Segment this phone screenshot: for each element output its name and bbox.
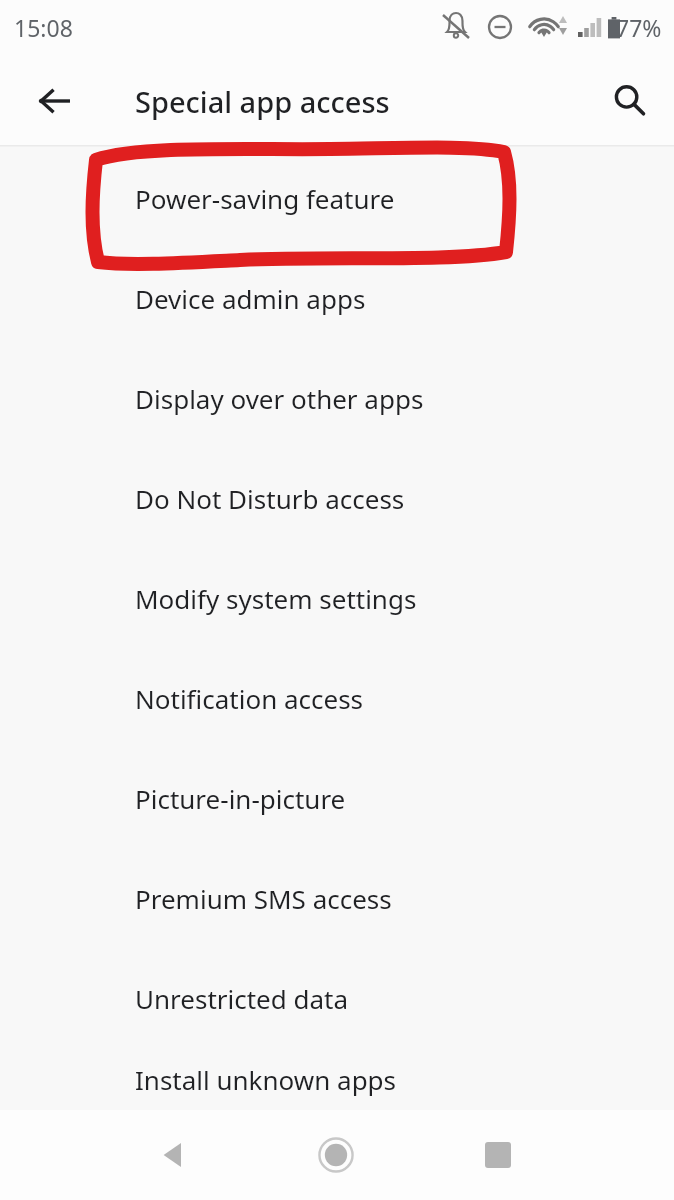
button[interactable]: Power-saving feature — [0, 148, 674, 248]
button[interactable]: Search — [596, 67, 664, 135]
button[interactable]: Picture-in-picture — [0, 748, 674, 848]
button[interactable]: Back — [141, 1121, 209, 1189]
staticText: Special app access — [135, 82, 390, 121]
button[interactable]: Do Not Disturb access — [0, 448, 674, 548]
button[interactable]: Display over other apps — [0, 348, 674, 448]
staticText: Device admin apps — [135, 281, 366, 316]
button[interactable]: Modify system settings — [0, 548, 674, 648]
staticText: Picture-in-picture — [135, 781, 346, 816]
staticText: Install unknown apps — [135, 1062, 397, 1097]
button[interactable]: Premium SMS access — [0, 848, 674, 948]
button[interactable]: Device admin apps — [0, 248, 674, 348]
button[interactable]: Unrestricted data — [0, 948, 674, 1048]
staticText: Display over other apps — [135, 381, 424, 416]
button[interactable]: Home — [302, 1121, 370, 1189]
staticText: Do Not Disturb access — [135, 481, 405, 516]
staticText: Unrestricted data — [135, 981, 349, 1016]
staticText: Notification access — [135, 681, 364, 716]
staticText: Premium SMS access — [135, 881, 392, 916]
staticText: Power-saving feature — [135, 181, 395, 216]
button[interactable]: Back — [20, 67, 88, 135]
staticText: Modify system settings — [135, 581, 417, 616]
button[interactable]: Notification access — [0, 648, 674, 748]
button[interactable]: Recent apps — [464, 1121, 532, 1189]
button[interactable]: Install unknown apps — [0, 1048, 674, 1110]
staticText: 15:08 — [14, 12, 73, 43]
staticText: 77% — [616, 12, 662, 43]
